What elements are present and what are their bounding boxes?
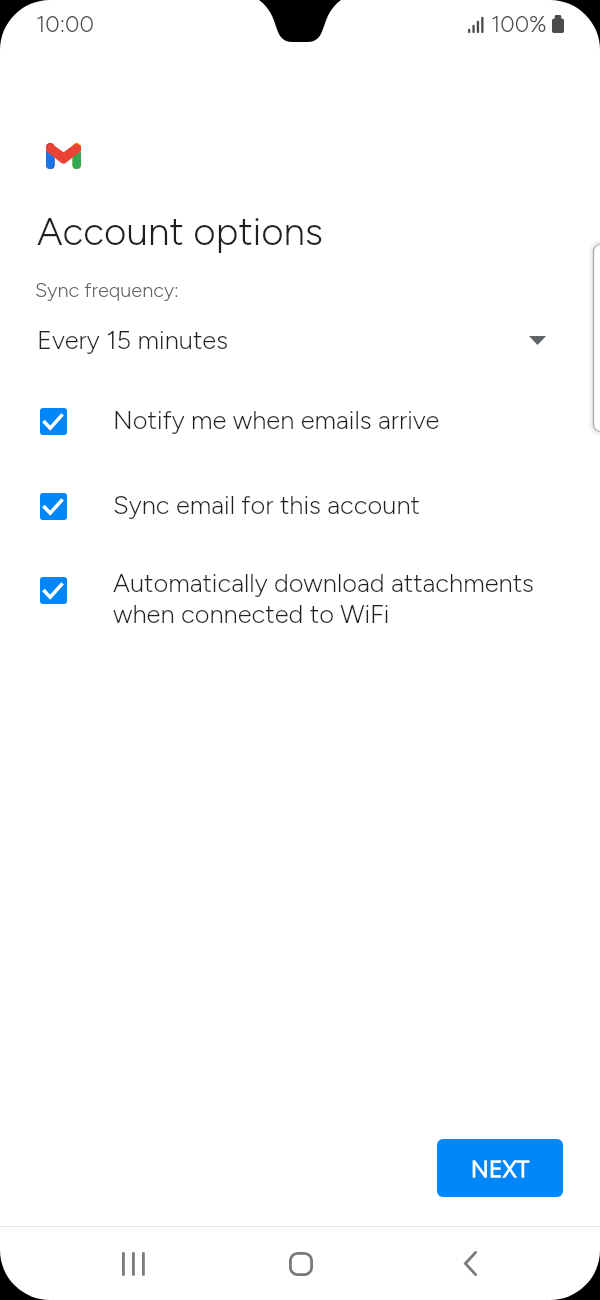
staticText: Account options <box>37 208 324 254</box>
button[interactable]: NEXT <box>437 1139 563 1197</box>
staticText: Sync frequency: <box>35 278 179 302</box>
button[interactable]: Home <box>267 1239 335 1288</box>
staticText: NEXT <box>471 1155 530 1182</box>
staticText: Automatically download attachments when … <box>113 568 534 630</box>
staticText: Every 15 minutes <box>37 325 229 356</box>
staticText: Sync email for this account <box>113 490 420 521</box>
button[interactable]: Automatically download attachments when … <box>0 576 600 638</box>
staticText: 10:00 <box>36 11 94 38</box>
button[interactable]: Recent apps <box>99 1239 168 1288</box>
button[interactable]: Sync email for this account <box>0 492 600 523</box>
button[interactable]: Back <box>436 1239 504 1288</box>
staticText: 100% <box>491 11 547 38</box>
button[interactable]: Notify me when emails arrive <box>0 407 600 438</box>
button[interactable]: Every 15 minutes <box>0 320 600 360</box>
staticText: Notify me when emails arrive <box>113 405 440 436</box>
